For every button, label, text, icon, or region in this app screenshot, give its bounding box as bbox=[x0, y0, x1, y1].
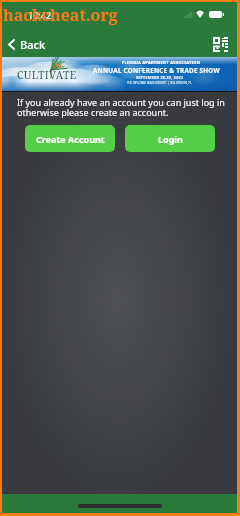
staticText: SEPTEMBER 28-30, 2022 bbox=[136, 75, 184, 80]
button[interactable]: Back bbox=[2, 32, 56, 57]
staticText: THE DIPLOMAT BEACH RESORT | HOLLYWOOD, F… bbox=[127, 81, 192, 85]
staticText: FLORIDA APARTMENT ASSOCIATION bbox=[122, 60, 201, 65]
staticText: ANNUAL CONFERENCE & TRADE SHOW bbox=[93, 66, 220, 75]
button[interactable]: Cultivate 2022 conference banner bbox=[2, 57, 237, 91]
staticText: hackcheat.org bbox=[3, 4, 118, 26]
button[interactable]: Scan QR code bbox=[213, 37, 228, 52]
button[interactable]: Create Account bbox=[25, 125, 115, 152]
staticText: Create Account bbox=[36, 133, 105, 145]
button[interactable]: Login bbox=[125, 125, 215, 152]
staticText: 10:42 bbox=[28, 9, 52, 21]
staticText: If you already have an account you can j… bbox=[17, 96, 228, 118]
staticText: Back bbox=[20, 37, 46, 52]
staticText: CULTIVATE bbox=[17, 68, 77, 82]
staticText: Login bbox=[158, 133, 183, 145]
